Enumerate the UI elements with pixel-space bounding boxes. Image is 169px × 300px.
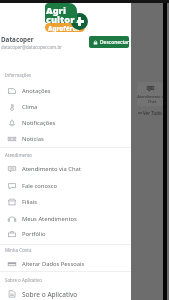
button[interactable]: Desconectar [89,36,129,48]
staticText: Agrofértil [48,24,80,32]
staticText: Clima [22,103,38,111]
button[interactable]: Clima [0,99,131,115]
button[interactable]: Notificações [0,115,131,131]
staticText: Ver Tudo [143,110,162,116]
staticText: Minha Conta [5,247,32,253]
button[interactable]: Atendimento via Chat [0,161,131,177]
staticText: Informações [5,72,32,78]
staticText: Notícias [22,135,44,143]
staticText: Sobre o Aplicativo [22,290,78,299]
staticText: Anotações [22,87,51,95]
staticText: Datacoper [1,35,34,44]
button[interactable]: Atendimento via Chat [137,82,164,106]
staticText: Desconectar [100,39,129,46]
button[interactable]: Alterar Dados Pessoais [0,256,131,272]
button[interactable]: Anotações [0,83,131,99]
staticText: Sobre o Aplicativo [5,277,42,283]
staticText: Atendimento via Chat [137,94,164,104]
staticText: Fale conosco [22,182,57,190]
button[interactable]: Ver Tudo [138,109,162,117]
staticText: datacoper@datacoper.com.br [1,44,62,50]
staticText: Atendimento via Chat [22,165,81,173]
staticText: Portfólio [22,230,46,238]
button[interactable]: Notícias [0,131,131,147]
button[interactable]: Filiais [0,194,131,210]
button[interactable]: Sobre o Aplicativo [0,286,131,300]
staticText: Notificações [22,119,56,127]
staticText: Atendimento [5,152,32,158]
staticText: Filiais [22,198,38,206]
button[interactable]: Meus Atendimentos [0,211,131,227]
staticText: Agri cultor [46,4,75,23]
button[interactable]: Fale conosco [0,178,131,194]
staticText: Meus Atendimentos [22,215,77,223]
button[interactable]: Portfólio [0,226,131,242]
staticText: Alterar Dados Pessoais [22,260,85,268]
